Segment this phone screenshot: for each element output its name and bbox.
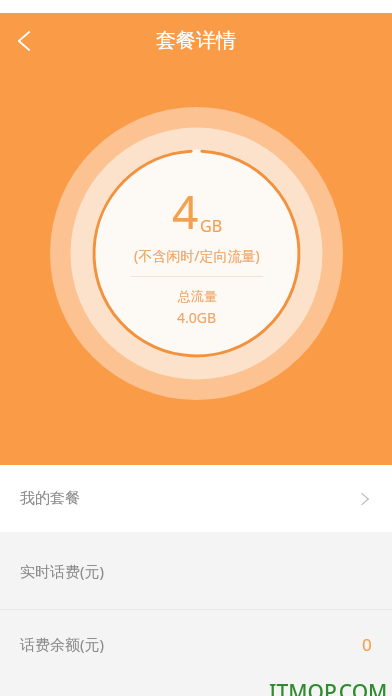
staticText: 套餐详情 [156,28,236,53]
staticText: 4 [172,180,199,243]
staticText: 实时话费(元) [20,561,105,581]
staticText: (不含闲时/定向流量) [134,246,260,265]
staticText: GB [200,215,223,237]
button[interactable]: 实时话费(元) [0,532,392,609]
staticText: 0 [362,633,372,656]
staticText: ITMOP.COM [269,678,388,696]
staticText: 话费余额(元) [20,634,105,654]
staticText: 我的套餐 [20,489,80,508]
staticText: 总流量 [178,288,217,304]
button[interactable]: 我的套餐 [0,465,392,532]
button[interactable]: Back [2,19,46,63]
button[interactable]: 话费余额(元) [0,610,392,678]
staticText: 4.0GB [177,308,217,327]
